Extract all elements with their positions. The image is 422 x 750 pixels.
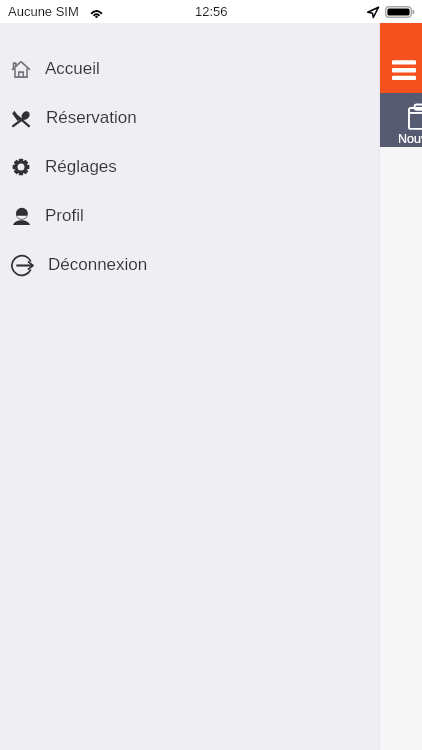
staticText: Accueil [45,59,100,78]
staticText: Réservation [46,108,137,127]
button[interactable]: Ouvrir le menu [388,53,420,81]
staticText: Réglages [45,157,117,176]
staticText: Profil [45,206,84,225]
staticText: Aucune SIM [8,4,79,19]
button[interactable]: Déconnexion [0,240,380,289]
staticText: Nouvelle [398,132,422,146]
button[interactable]: Réglages [0,142,380,191]
staticText: 12:56 [195,4,228,19]
button[interactable]: Nouvelle [389,93,422,147]
button[interactable]: Accueil [0,44,380,93]
button[interactable]: Réservation [0,93,380,142]
button[interactable]: Profil [0,191,380,240]
staticText: Déconnexion [48,255,148,274]
